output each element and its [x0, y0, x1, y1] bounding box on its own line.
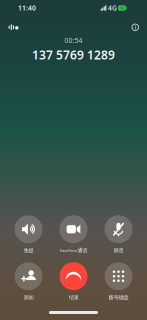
staticText: 137 5769 1289: [32, 47, 115, 63]
button[interactable]: 添加: [6, 261, 51, 302]
staticText: 4G: [108, 4, 117, 12]
button[interactable]: 拨号键盘: [96, 261, 141, 302]
staticText: 结束: [68, 294, 78, 301]
button[interactable]: 免提: [6, 214, 51, 255]
staticText: 00:54: [64, 36, 82, 45]
staticText: 静音: [113, 247, 123, 254]
staticText: 免提: [23, 247, 33, 254]
button[interactable]: Call info: [128, 20, 142, 34]
staticText: 11:40: [18, 4, 36, 12]
button[interactable]: 结束: [51, 261, 96, 302]
button[interactable]: 静音: [96, 214, 141, 255]
staticText: i: [135, 24, 136, 31]
staticText: 通话: [77, 247, 87, 254]
staticText: 添加: [23, 294, 33, 301]
staticText: 50: [120, 5, 124, 11]
staticText: 拨号键盘: [108, 294, 128, 301]
button[interactable]: FaceTime: [51, 214, 96, 255]
staticText: FaceTime: [60, 248, 77, 253]
